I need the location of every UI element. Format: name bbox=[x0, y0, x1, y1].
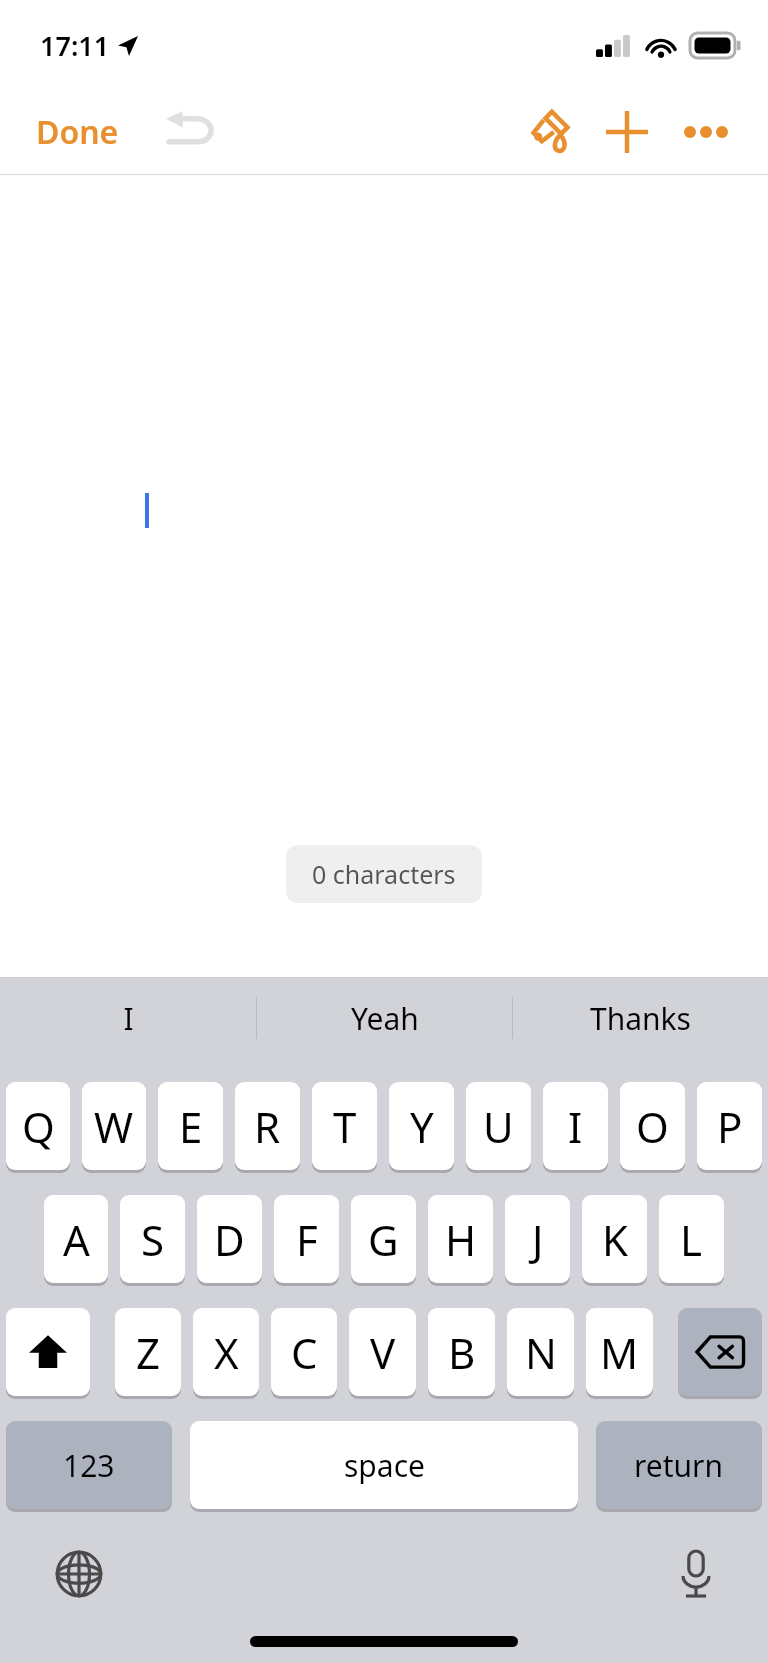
staticText: D bbox=[214, 1211, 245, 1268]
button[interactable]: N bbox=[507, 1308, 574, 1396]
button[interactable]: Dictate bbox=[668, 1539, 724, 1609]
button[interactable]: Delete bbox=[678, 1308, 762, 1396]
staticText: 17:11 bbox=[40, 27, 110, 64]
button[interactable]: K bbox=[582, 1195, 647, 1283]
staticText: C bbox=[291, 1324, 318, 1381]
staticText: Y bbox=[410, 1098, 434, 1155]
staticText: Thanks bbox=[590, 998, 691, 1039]
button[interactable]: E bbox=[158, 1082, 223, 1170]
staticText: P bbox=[717, 1098, 743, 1155]
button[interactable]: Add bbox=[588, 93, 666, 171]
button[interactable]: Markup bbox=[514, 95, 588, 169]
button[interactable]: X bbox=[193, 1308, 259, 1396]
button[interactable]: B bbox=[428, 1308, 495, 1396]
button[interactable]: I bbox=[543, 1082, 608, 1170]
button[interactable]: A bbox=[44, 1195, 108, 1283]
button[interactable]: Q bbox=[6, 1082, 70, 1170]
button[interactable]: U bbox=[466, 1082, 531, 1170]
button[interactable]: More options bbox=[666, 108, 746, 156]
button[interactable]: W bbox=[82, 1082, 146, 1170]
staticText: E bbox=[179, 1098, 203, 1155]
staticText: return bbox=[634, 1445, 724, 1486]
button[interactable]: Z bbox=[115, 1308, 181, 1396]
staticText: H bbox=[445, 1211, 477, 1268]
staticText: T bbox=[333, 1098, 357, 1155]
staticText: A bbox=[63, 1211, 90, 1268]
button[interactable]: Done bbox=[0, 98, 155, 166]
button[interactable]: T bbox=[312, 1082, 377, 1170]
button[interactable]: M bbox=[586, 1308, 653, 1396]
button[interactable]: S bbox=[120, 1195, 185, 1283]
button[interactable]: space bbox=[190, 1421, 578, 1509]
button[interactable]: D bbox=[197, 1195, 262, 1283]
button[interactable]: C bbox=[271, 1308, 337, 1396]
button[interactable]: Change keyboard bbox=[44, 1539, 114, 1609]
button[interactable]: L bbox=[659, 1195, 724, 1283]
staticText: Yeah bbox=[351, 998, 419, 1039]
button[interactable]: V bbox=[349, 1308, 416, 1396]
button[interactable]: I bbox=[0, 977, 256, 1059]
staticText: Done bbox=[36, 110, 119, 154]
button[interactable]: H bbox=[428, 1195, 493, 1283]
staticText: X bbox=[214, 1324, 239, 1381]
button[interactable]: P bbox=[697, 1082, 762, 1170]
staticText: V bbox=[370, 1324, 396, 1381]
staticText: space bbox=[344, 1445, 425, 1486]
staticText: L bbox=[680, 1211, 703, 1268]
staticText: I bbox=[568, 1098, 583, 1155]
button[interactable]: R bbox=[235, 1082, 300, 1170]
button[interactable]: F bbox=[274, 1195, 339, 1283]
button[interactable]: G bbox=[351, 1195, 416, 1283]
staticText: Z bbox=[136, 1324, 161, 1381]
staticText: W bbox=[94, 1098, 134, 1155]
staticText: I bbox=[123, 998, 134, 1039]
staticText: G bbox=[368, 1211, 399, 1268]
staticText: K bbox=[602, 1211, 628, 1268]
button[interactable]: Yeah bbox=[257, 977, 512, 1059]
staticText: S bbox=[141, 1211, 165, 1268]
staticText: M bbox=[600, 1324, 639, 1381]
button[interactable]: O bbox=[620, 1082, 685, 1170]
button[interactable]: Undo bbox=[155, 102, 227, 162]
button[interactable]: return bbox=[596, 1421, 762, 1509]
staticText: F bbox=[296, 1211, 318, 1268]
staticText: N bbox=[525, 1324, 557, 1381]
staticText: B bbox=[448, 1324, 476, 1381]
staticText: J bbox=[532, 1211, 544, 1268]
staticText: O bbox=[636, 1098, 669, 1155]
staticText: 0 characters bbox=[312, 857, 456, 891]
staticText: Q bbox=[22, 1098, 55, 1155]
button[interactable]: 123 bbox=[6, 1421, 172, 1509]
button[interactable]: Thanks bbox=[513, 977, 768, 1059]
staticText: 123 bbox=[63, 1445, 115, 1486]
button[interactable]: Y bbox=[389, 1082, 454, 1170]
button[interactable]: Shift bbox=[6, 1308, 90, 1396]
button[interactable]: J bbox=[505, 1195, 570, 1283]
staticText: U bbox=[483, 1098, 514, 1155]
staticText: R bbox=[254, 1098, 281, 1155]
